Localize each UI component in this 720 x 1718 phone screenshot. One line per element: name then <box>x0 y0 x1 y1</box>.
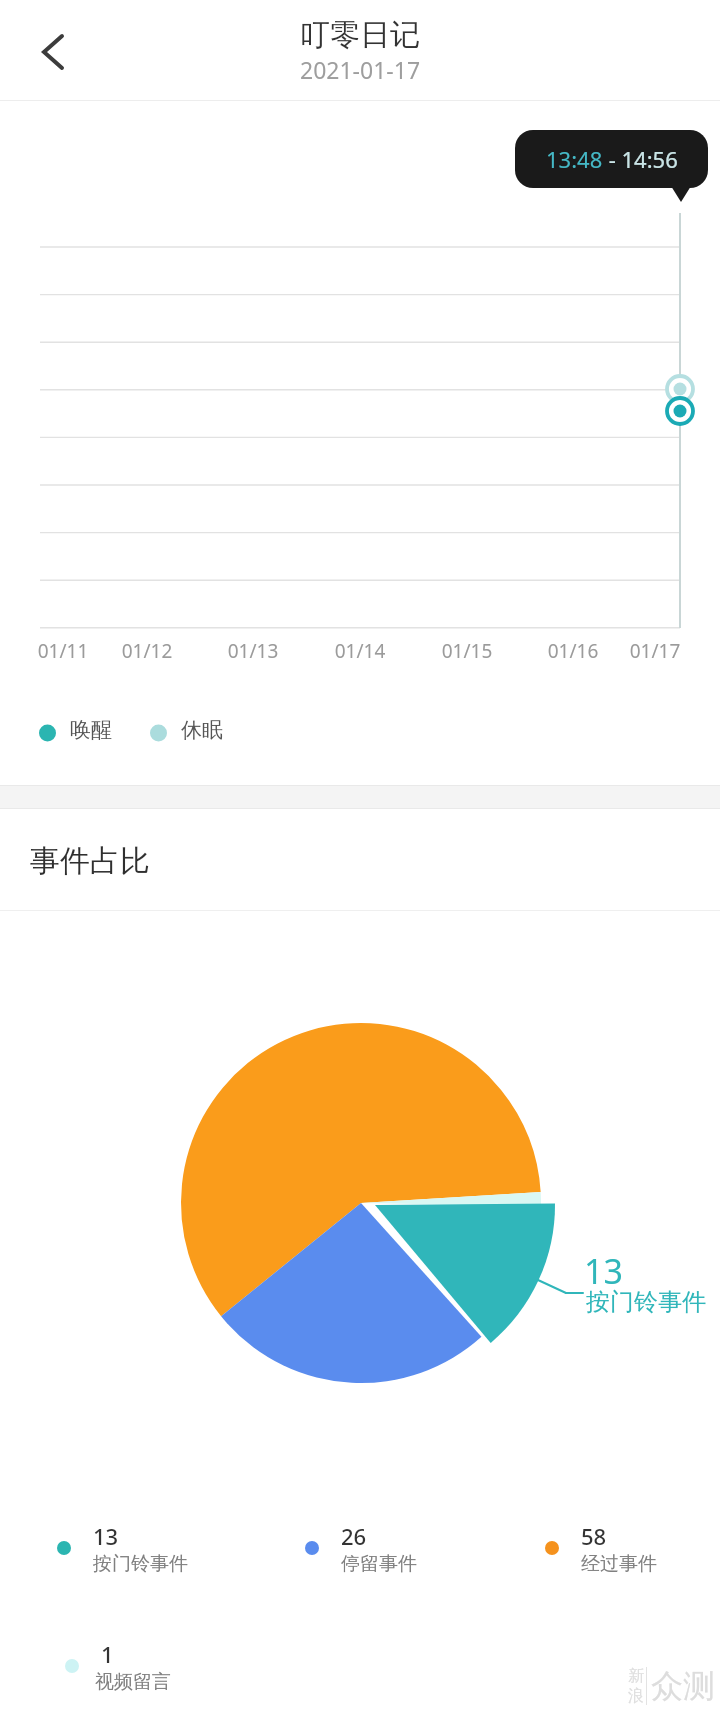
button[interactable]: 唤醒 <box>36 714 128 752</box>
staticText: 58 <box>581 1521 607 1551</box>
button[interactable]: 休眠 <box>147 714 239 752</box>
staticText: 事件占比 <box>30 842 150 880</box>
staticText: 2021-01-17 <box>300 54 421 85</box>
staticText: 13 <box>93 1521 119 1551</box>
staticText: 经过事件 <box>581 1552 657 1576</box>
staticText: 01/12 <box>102 638 192 664</box>
staticText: 1 <box>101 1639 114 1669</box>
button[interactable]: 58 <box>542 1516 720 1584</box>
staticText: 26 <box>341 1521 367 1551</box>
staticText: 浪 <box>628 1686 644 1706</box>
staticText: 视频留言 <box>95 1670 171 1694</box>
staticText: 01/13 <box>208 638 298 664</box>
staticText: 停留事件 <box>341 1552 417 1576</box>
staticText: 01/14 <box>315 638 405 664</box>
staticText: - 14:56 <box>603 144 678 174</box>
staticText: 新 <box>628 1666 644 1686</box>
staticText: 按门铃事件 <box>586 1287 706 1317</box>
staticText: 13 <box>584 1248 623 1294</box>
staticText: 01/16 <box>528 638 618 664</box>
staticText: 13:48 <box>546 144 603 174</box>
button[interactable]: 13 <box>54 1516 244 1584</box>
button[interactable]: 26 <box>302 1516 492 1584</box>
staticText: 按门铃事件 <box>93 1552 188 1576</box>
staticText: 01/15 <box>422 638 512 664</box>
button[interactable]: 13:48 <box>515 130 708 188</box>
staticText: 01/11 <box>18 638 108 664</box>
staticText: 唤醒 <box>70 717 112 743</box>
staticText: 众测 <box>651 1666 715 1706</box>
staticText: 01/17 <box>610 638 700 664</box>
button[interactable] <box>30 26 78 74</box>
staticText: 休眠 <box>181 717 223 743</box>
button[interactable]: 1 <box>62 1634 252 1702</box>
staticText: 叮零日记 <box>300 16 420 54</box>
